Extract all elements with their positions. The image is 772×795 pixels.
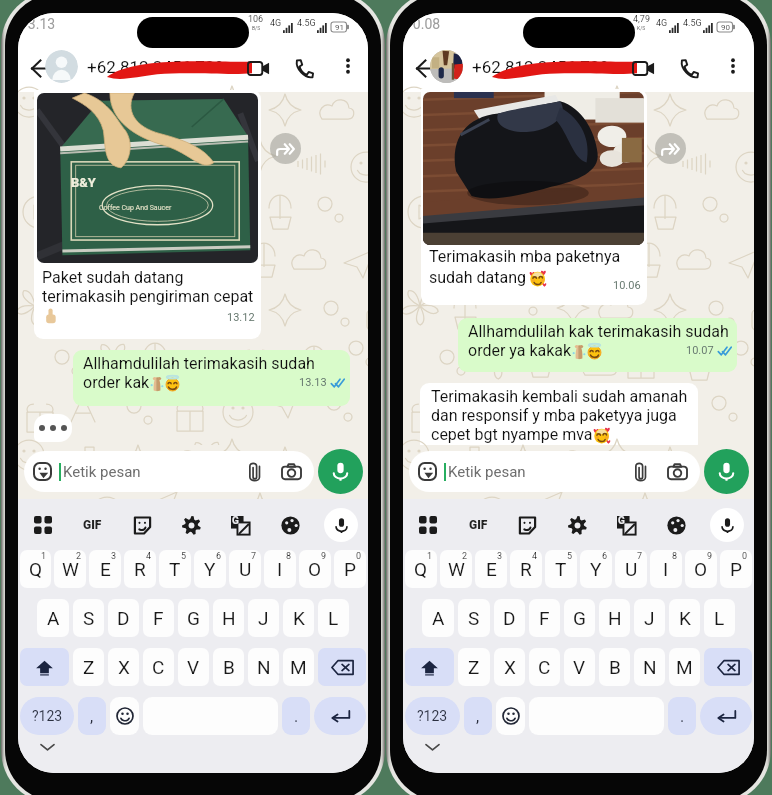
button[interactable]: Video call <box>625 50 662 87</box>
button[interactable]: F <box>143 599 174 637</box>
button[interactable]: K <box>283 599 314 637</box>
button[interactable]: U <box>229 550 261 588</box>
button[interactable]: Y <box>580 550 612 588</box>
button[interactable]: M <box>283 648 314 686</box>
button[interactable]: Voice message <box>704 449 749 494</box>
button[interactable]: Stickers <box>127 510 157 540</box>
button[interactable]: J <box>248 599 279 637</box>
button[interactable]: B <box>213 648 244 686</box>
button[interactable]: S <box>458 599 490 637</box>
button[interactable]: O <box>299 550 331 588</box>
button[interactable]: Back <box>408 50 445 87</box>
button[interactable]: I <box>264 550 296 588</box>
button[interactable]: H <box>599 599 630 637</box>
button[interactable]: N <box>248 648 279 686</box>
button[interactable]: P <box>334 550 366 588</box>
button[interactable]: More options <box>332 50 364 82</box>
button[interactable]: T <box>545 550 577 588</box>
button[interactable]: Period <box>668 697 696 735</box>
button[interactable]: Z <box>73 648 104 686</box>
button[interactable]: Z <box>458 648 490 686</box>
button[interactable]: Apps <box>413 510 443 540</box>
button[interactable]: Back <box>23 50 60 87</box>
button[interactable]: GIF <box>463 510 493 540</box>
button[interactable]: Q <box>20 550 51 588</box>
button[interactable]: Y <box>194 550 226 588</box>
button[interactable]: W <box>440 550 472 588</box>
button[interactable]: A <box>37 599 69 637</box>
button[interactable]: Translate <box>611 510 641 540</box>
button[interactable]: Comma <box>464 697 492 735</box>
button[interactable]: GIF <box>77 510 107 540</box>
button[interactable]: B <box>599 648 630 686</box>
button[interactable]: Ketik pesan <box>24 451 314 492</box>
button[interactable]: Voice message <box>318 449 363 494</box>
button[interactable]: D <box>494 599 525 637</box>
button[interactable]: Theme <box>275 510 305 540</box>
button[interactable]: Voice input <box>710 508 744 542</box>
button[interactable]: Emoji <box>496 697 525 735</box>
button[interactable]: Apps <box>28 510 58 540</box>
button[interactable]: G <box>564 599 595 637</box>
button[interactable]: Symbols <box>20 697 74 735</box>
button[interactable]: Settings <box>562 510 592 540</box>
button[interactable]: F <box>529 599 560 637</box>
button[interactable]: P <box>720 550 752 588</box>
button[interactable]: H <box>213 599 244 637</box>
button[interactable]: Shift <box>20 648 69 686</box>
button[interactable]: Shift <box>405 648 454 686</box>
button[interactable]: O <box>685 550 717 588</box>
button[interactable]: U <box>615 550 647 588</box>
button[interactable]: Symbols <box>405 697 460 735</box>
button[interactable]: Stickers <box>512 510 542 540</box>
button[interactable]: Backspace <box>704 648 752 686</box>
button[interactable]: L <box>704 599 735 637</box>
button[interactable]: X <box>108 648 139 686</box>
button[interactable]: E <box>475 550 507 588</box>
button[interactable]: Voice input <box>324 508 358 542</box>
button[interactable]: X <box>494 648 525 686</box>
button[interactable]: S <box>73 599 104 637</box>
button[interactable]: G <box>178 599 209 637</box>
button[interactable]: C <box>143 648 174 686</box>
button[interactable]: Period <box>282 697 310 735</box>
button[interactable]: Allhamdulilah kak terimakasih sudah <box>458 318 737 372</box>
button[interactable]: I <box>650 550 682 588</box>
button[interactable]: M <box>669 648 700 686</box>
button[interactable]: D <box>108 599 139 637</box>
button[interactable]: W <box>54 550 86 588</box>
button[interactable]: Theme <box>661 510 691 540</box>
button[interactable]: Video call <box>240 50 277 87</box>
button[interactable]: Enter <box>314 697 366 735</box>
button[interactable]: Ketik pesan <box>409 451 700 492</box>
button[interactable]: R <box>510 550 542 588</box>
button[interactable]: Q <box>405 550 437 588</box>
button[interactable]: Allhamdulilah terimakasih sudah <box>73 350 350 406</box>
button[interactable]: More options <box>717 50 749 82</box>
button[interactable]: Forward <box>655 133 686 164</box>
button[interactable]: Forward <box>270 133 301 164</box>
button[interactable]: Backspace <box>318 648 366 686</box>
button[interactable]: V <box>178 648 209 686</box>
button[interactable]: Voice call <box>671 50 708 87</box>
button[interactable]: K <box>669 599 700 637</box>
button[interactable]: C <box>529 648 560 686</box>
button[interactable]: Translate <box>225 510 255 540</box>
button[interactable]: E <box>89 550 121 588</box>
button[interactable]: L <box>318 599 349 637</box>
button[interactable]: J <box>634 599 665 637</box>
staticText: C <box>538 656 551 678</box>
button[interactable]: N <box>634 648 665 686</box>
button[interactable]: A <box>422 599 454 637</box>
button[interactable]: Settings <box>176 510 206 540</box>
button[interactable]: Emoji <box>110 697 139 735</box>
button[interactable]: Voice call <box>286 50 323 87</box>
button[interactable]: T <box>159 550 191 588</box>
button[interactable]: V <box>564 648 595 686</box>
button[interactable]: Enter <box>700 697 752 735</box>
button[interactable]: Comma <box>78 697 106 735</box>
button[interactable]: Terimakasih kembali sudah amanah <box>420 383 698 453</box>
button[interactable]: R <box>124 550 156 588</box>
